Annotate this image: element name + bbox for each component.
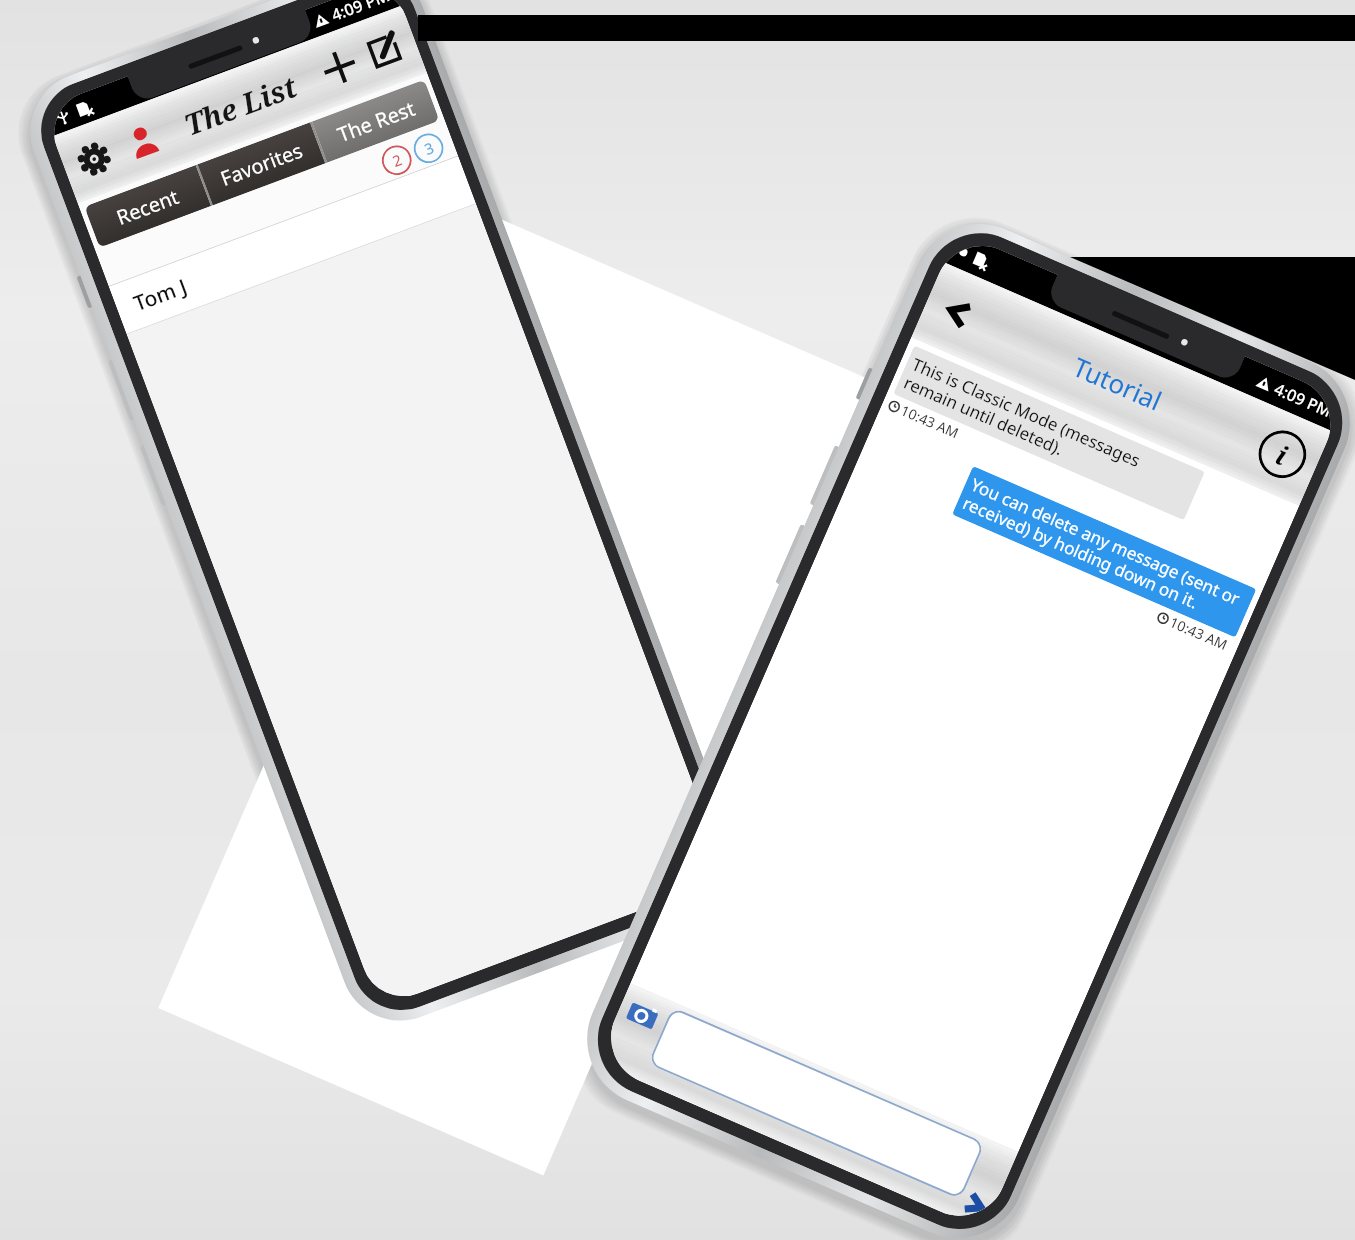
button[interactable]: The Rest — [312, 79, 440, 163]
button[interactable]: Camera — [617, 990, 670, 1042]
button[interactable]: Back — [932, 287, 985, 340]
button[interactable]: Settings — [70, 135, 119, 183]
staticText: Favorites — [217, 137, 307, 192]
staticText: 4:09 PM — [1271, 378, 1336, 422]
button[interactable]: 3 — [409, 129, 448, 168]
staticText: You can delete any message (sent or rece… — [959, 473, 1249, 631]
button[interactable]: Compose — [359, 25, 410, 76]
staticText: i — [1271, 437, 1294, 473]
button[interactable]: Favorites — [198, 122, 325, 205]
button[interactable]: Send — [956, 1184, 996, 1224]
button[interactable]: Info — [1251, 423, 1314, 486]
button[interactable]: Contacts — [118, 116, 167, 165]
staticText: 2 — [389, 149, 405, 171]
staticText: Tom J — [130, 272, 191, 318]
staticText: This is Classic Mode (messages remain un… — [901, 352, 1197, 513]
staticText: The Rest — [334, 94, 419, 148]
staticText: 10:43 AM — [898, 400, 962, 443]
button[interactable]: Add — [314, 42, 365, 93]
staticText: 10:43 AM — [1167, 612, 1231, 654]
staticText: 3 — [421, 137, 437, 159]
staticText: The List — [178, 66, 303, 144]
button[interactable]: Tom J — [109, 156, 476, 334]
button[interactable] — [648, 1007, 985, 1200]
staticText: Recent — [113, 183, 183, 231]
button[interactable]: Recent — [84, 165, 211, 248]
staticText: Tutorial — [1068, 348, 1168, 418]
staticText: 4:09 PM — [328, 0, 393, 26]
button[interactable]: 2 — [377, 141, 416, 179]
